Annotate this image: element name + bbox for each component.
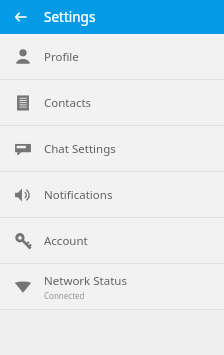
staticText: Connected (44, 290, 85, 301)
staticText: Chat Settings (44, 141, 116, 157)
button[interactable]: Account (0, 218, 224, 263)
staticText: Account (44, 233, 88, 249)
button[interactable]: Back (8, 4, 34, 30)
staticText: Network Status (44, 273, 127, 289)
staticText: Notifications (44, 187, 113, 203)
staticText: Contacts (44, 95, 92, 111)
button[interactable]: Chat Settings (0, 126, 224, 171)
button[interactable]: Notifications (0, 172, 224, 217)
button[interactable]: Network Status (0, 264, 224, 309)
button[interactable]: Profile (0, 34, 224, 79)
staticText: Settings (44, 8, 96, 26)
button[interactable]: Contacts (0, 80, 224, 125)
staticText: Profile (44, 49, 79, 65)
